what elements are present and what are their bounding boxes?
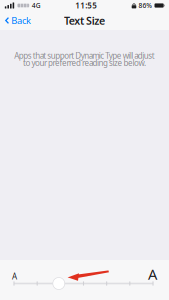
button[interactable]: Back [0,11,35,30]
staticText: A [12,271,17,282]
staticText: A [148,264,157,284]
staticText: to your preferred reading size below. [23,57,146,68]
staticText: 4G [32,1,41,10]
staticText: Text Size [64,13,105,28]
staticText: Apps that support Dynamic Type will adju… [14,50,155,61]
staticText: 11:55 [75,0,97,11]
staticText: Back [11,14,31,27]
staticText: 86% [138,1,152,10]
